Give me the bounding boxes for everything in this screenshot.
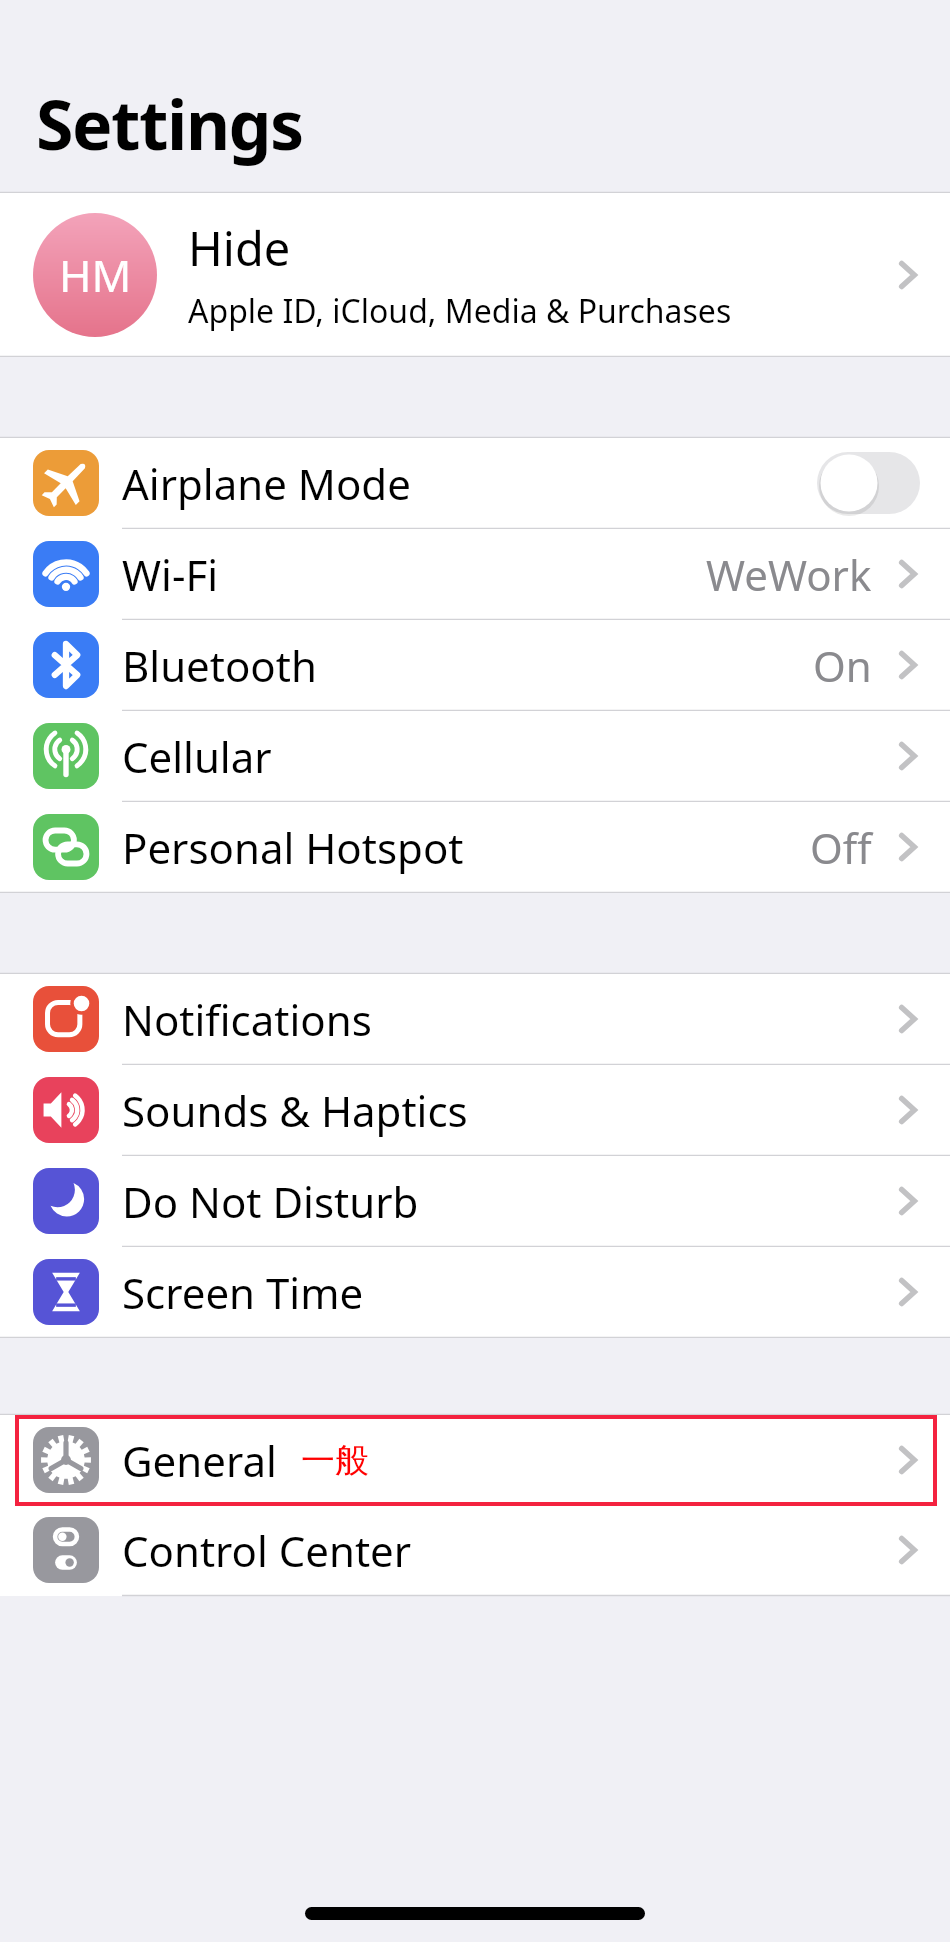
button[interactable]: Notifications — [0, 974, 950, 1064]
staticText: Wi-Fi — [122, 546, 219, 603]
staticText: Off — [810, 819, 872, 876]
staticText: General — [122, 1432, 277, 1489]
button[interactable]: Bluetooth — [0, 620, 950, 710]
staticText: Sounds & Haptics — [122, 1082, 468, 1139]
button[interactable]: Do Not Disturb — [0, 1156, 950, 1246]
button[interactable]: Screen Time — [0, 1247, 950, 1337]
staticText: HM — [59, 245, 132, 305]
button[interactable]: Wi-Fi — [0, 529, 950, 619]
staticText: 一般 — [301, 1439, 369, 1482]
staticText: Apple ID, iCloud, Media & Purchases — [188, 289, 732, 333]
button[interactable]: General — [0, 1415, 950, 1505]
staticText: Control Center — [122, 1522, 412, 1579]
staticText: WeWork — [706, 546, 872, 603]
staticText: Notifications — [122, 991, 372, 1048]
staticText: Screen Time — [122, 1264, 364, 1321]
staticText: Do Not Disturb — [122, 1173, 419, 1230]
button[interactable]: Personal Hotspot — [0, 802, 950, 892]
staticText: On — [813, 637, 872, 694]
staticText: Personal Hotspot — [122, 819, 464, 876]
button[interactable]: Sounds & Haptics — [0, 1065, 950, 1155]
staticText: Settings — [36, 77, 303, 170]
staticText: Bluetooth — [122, 637, 317, 694]
staticText: Hide — [188, 216, 291, 280]
button[interactable]: Cellular — [0, 711, 950, 801]
staticText: Cellular — [122, 728, 272, 785]
button[interactable]: HM — [0, 193, 950, 356]
button[interactable]: Airplane Mode — [0, 438, 950, 528]
button[interactable]: Control Center — [0, 1505, 950, 1595]
staticText: Airplane Mode — [122, 455, 411, 512]
